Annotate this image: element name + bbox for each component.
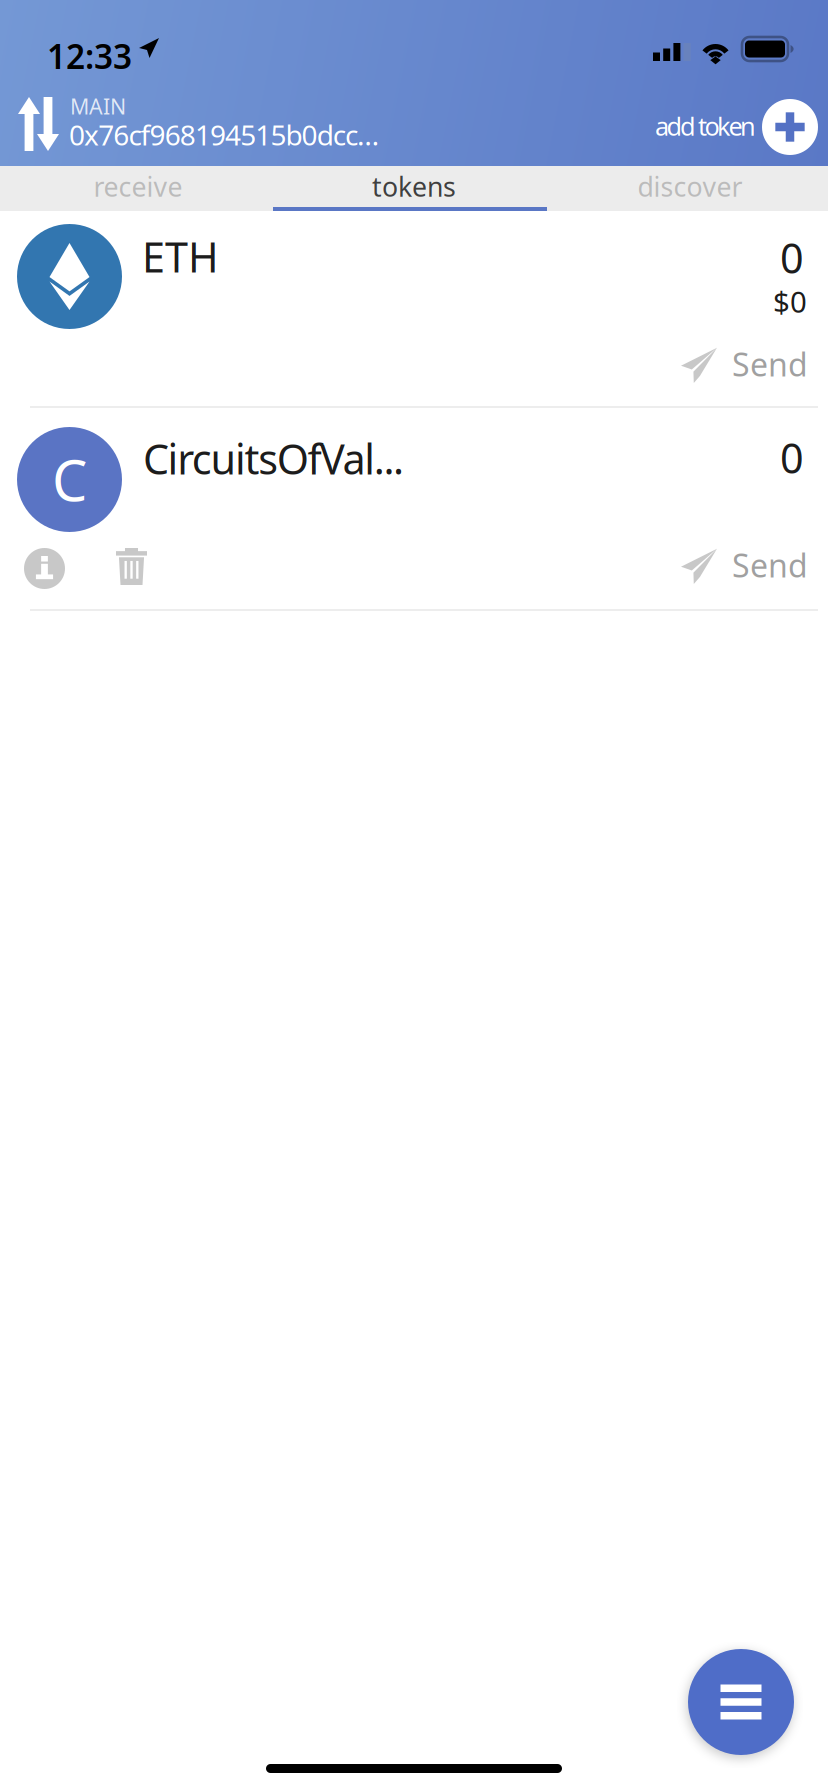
- staticText: 0: [780, 230, 804, 285]
- staticText: discover: [637, 169, 742, 204]
- staticText: CircuitsOfVal...: [143, 431, 404, 486]
- staticText: Send: [732, 544, 808, 586]
- button[interactable]: Menu: [688, 1649, 794, 1755]
- button[interactable]: discover: [552, 166, 828, 207]
- staticText: Send: [732, 343, 808, 385]
- staticText: tokens: [372, 169, 456, 204]
- staticText: add token: [655, 109, 756, 143]
- button[interactable]: add token: [638, 84, 828, 166]
- staticText: ETH: [142, 229, 219, 284]
- button[interactable]: ETH: [0, 211, 828, 406]
- button[interactable]: receive: [0, 166, 276, 207]
- staticText: receive: [93, 169, 182, 204]
- button[interactable]: Token info: [24, 548, 65, 589]
- staticText: MAIN: [70, 92, 126, 120]
- button[interactable]: C: [0, 408, 828, 609]
- staticText: $0: [773, 282, 807, 321]
- button[interactable]: Send: [681, 547, 804, 585]
- button[interactable]: Send: [681, 346, 804, 384]
- staticText: 0: [780, 430, 804, 485]
- button[interactable]: MAIN: [0, 84, 500, 166]
- button[interactable]: Delete token: [116, 548, 147, 585]
- staticText: 12:33: [47, 34, 132, 78]
- button[interactable]: tokens: [276, 166, 552, 207]
- staticText: 0x76cf968194515b0dcc…: [69, 116, 379, 153]
- staticText: C: [52, 442, 87, 517]
